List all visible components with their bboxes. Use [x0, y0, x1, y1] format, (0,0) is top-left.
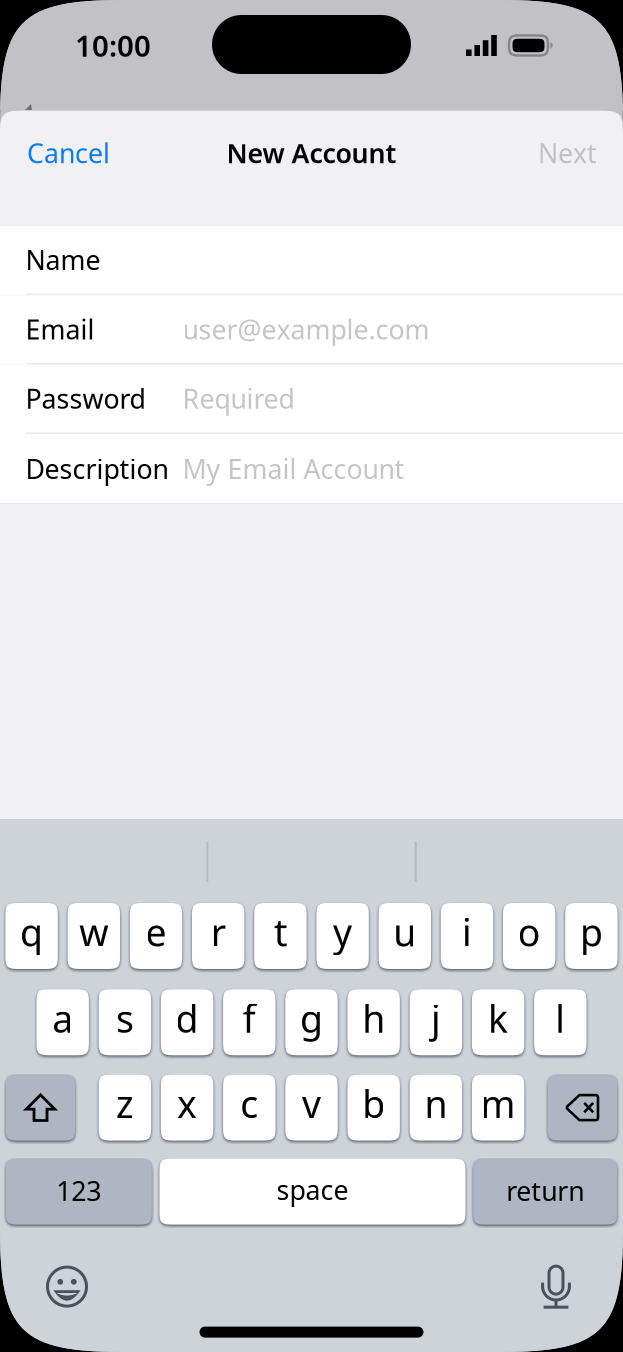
button[interactable]: n: [410, 1075, 462, 1141]
button[interactable]: Delete: [548, 1075, 617, 1141]
staticText: i: [462, 907, 472, 957]
button[interactable]: l: [534, 989, 586, 1055]
button[interactable]: z: [99, 1075, 151, 1141]
staticText: r: [211, 907, 226, 957]
button[interactable]: a: [36, 989, 89, 1055]
staticText: e: [145, 907, 166, 957]
staticText: d: [176, 993, 199, 1043]
button[interactable]: space: [159, 1159, 465, 1225]
button[interactable]: o: [503, 903, 555, 969]
button[interactable]: Email: [0, 295, 623, 365]
staticText: Description: [25, 451, 168, 486]
staticText: p: [580, 907, 603, 957]
staticText: m: [481, 1079, 516, 1128]
staticText: Cancel: [27, 135, 110, 170]
button[interactable]: h: [347, 989, 400, 1055]
staticText: n: [424, 1079, 447, 1128]
staticText: My Email Account: [182, 451, 404, 486]
staticText: c: [240, 1079, 258, 1128]
button[interactable]: Name: [0, 226, 623, 295]
staticText: v: [302, 1079, 321, 1128]
staticText: f: [243, 993, 256, 1043]
button[interactable]: d: [161, 989, 213, 1055]
button[interactable]: Emoji keyboard: [37, 1257, 97, 1317]
staticText: Next: [538, 135, 597, 170]
staticText: o: [518, 907, 541, 957]
staticText: 10:00: [75, 26, 151, 65]
button[interactable]: return: [473, 1159, 617, 1225]
staticText: k: [488, 993, 508, 1043]
staticText: u: [393, 907, 416, 957]
button[interactable]: v: [285, 1075, 338, 1141]
staticText: j: [431, 993, 441, 1043]
button[interactable]: r: [192, 903, 244, 969]
button[interactable]: x: [161, 1075, 213, 1141]
staticText: return: [506, 1173, 584, 1208]
staticText: Name: [25, 242, 100, 277]
staticText: y: [333, 907, 352, 957]
button[interactable]: w: [68, 903, 120, 969]
button[interactable]: p: [565, 903, 618, 969]
staticText: Required: [182, 381, 294, 416]
button[interactable]: q: [5, 903, 58, 969]
staticText: x: [177, 1079, 197, 1128]
button[interactable]: y: [316, 903, 369, 969]
staticText: q: [20, 907, 43, 957]
button[interactable]: u: [379, 903, 431, 969]
button[interactable]: Cancel: [0, 120, 126, 186]
staticText: b: [362, 1079, 385, 1128]
button[interactable]: Next: [522, 120, 623, 186]
button[interactable]: i: [441, 903, 493, 969]
staticText: g: [300, 993, 323, 1043]
staticText: New Account: [226, 135, 396, 170]
staticText: space: [276, 1172, 348, 1207]
button[interactable]: s: [99, 989, 151, 1055]
button[interactable]: Password: [0, 365, 623, 434]
button[interactable]: 123: [6, 1159, 152, 1225]
staticText: h: [362, 993, 385, 1043]
button[interactable]: m: [472, 1075, 524, 1141]
staticText: z: [116, 1079, 134, 1128]
button[interactable]: g: [285, 989, 338, 1055]
staticText: user@example.com: [182, 311, 429, 347]
button[interactable]: c: [223, 1075, 275, 1141]
staticText: Email: [25, 311, 94, 347]
button[interactable]: j: [410, 989, 462, 1055]
button[interactable]: Dictation: [526, 1257, 586, 1317]
staticText: w: [79, 907, 108, 957]
button[interactable]: b: [347, 1075, 400, 1141]
button[interactable]: f: [223, 989, 275, 1055]
staticText: Password: [25, 381, 145, 416]
staticText: a: [52, 993, 73, 1043]
button[interactable]: Shift: [6, 1075, 75, 1141]
staticText: 123: [56, 1173, 101, 1208]
staticText: l: [555, 993, 565, 1043]
button[interactable]: e: [130, 903, 182, 969]
button[interactable]: Description: [0, 434, 623, 503]
staticText: t: [274, 907, 287, 957]
staticText: s: [116, 993, 134, 1043]
button[interactable]: k: [472, 989, 524, 1055]
button[interactable]: t: [254, 903, 307, 969]
